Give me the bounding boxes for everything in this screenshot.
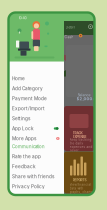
- staticText: Export/Import: [12, 106, 45, 111]
- staticText: More Apps: [12, 136, 36, 141]
- button[interactable]: Feedback: [8, 161, 64, 171]
- staticText: 10:40: [18, 16, 26, 20]
- button[interactable]: Add Category: [8, 83, 64, 93]
- staticText: Feedback: [12, 164, 36, 169]
- staticText: REPORTS: [72, 178, 86, 182]
- staticText: Settings: [12, 116, 30, 121]
- staticText: View financial data with graphs, charts …: [69, 183, 92, 197]
- button[interactable]: Share with friends: [8, 171, 64, 181]
- staticText: App Lock: [12, 126, 34, 131]
- button[interactable]: More Apps: [8, 133, 64, 143]
- staticText: Home: [12, 76, 25, 81]
- staticText: Cash: [64, 35, 73, 39]
- staticText: TRACK EXPENSE: [72, 131, 86, 139]
- staticText: Add Category: [12, 86, 43, 91]
- staticText: Terms Of Service: [12, 194, 52, 199]
- button[interactable]: Export/Import: [8, 103, 64, 113]
- button[interactable]: Terms Of Service: [8, 191, 64, 201]
- staticText: $2,000.00: [76, 96, 99, 101]
- button[interactable]: Settings: [8, 113, 64, 123]
- staticText: Rate the app: [12, 154, 41, 159]
- staticText: Share with friends: [12, 174, 54, 179]
- button[interactable]: Rate the app: [8, 151, 64, 161]
- button[interactable]: Privacy Policy: [8, 181, 64, 191]
- staticText: Payment Mode: [12, 96, 47, 101]
- button[interactable]: Payment Mode: [8, 93, 64, 103]
- button[interactable]: Home: [8, 73, 64, 83]
- staticText: Privacy Policy: [12, 184, 45, 189]
- staticText: Communication: [12, 144, 45, 149]
- button[interactable]: App Lock: [8, 123, 64, 133]
- staticText: Balance: [77, 93, 90, 97]
- staticText: Keep tracking the daily expenses and nev…: [69, 138, 92, 156]
- staticText: Dash: [65, 25, 74, 29]
